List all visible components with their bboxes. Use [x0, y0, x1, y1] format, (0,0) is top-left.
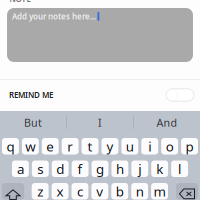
button[interactable]: k [151, 160, 168, 177]
button[interactable]: w [22, 138, 39, 154]
button[interactable]: x [52, 183, 68, 199]
staticText: m [153, 182, 165, 200]
staticText: z [37, 182, 43, 200]
button[interactable]: g [91, 160, 108, 177]
button[interactable]: y [101, 138, 118, 154]
staticText: REMIND ME [9, 90, 53, 100]
button[interactable]: u [121, 138, 138, 154]
staticText: h [116, 160, 124, 178]
button[interactable]: m [151, 183, 168, 199]
staticText: s [37, 160, 43, 178]
button[interactable]: Shift [2, 183, 24, 199]
staticText: c [77, 182, 83, 200]
staticText: a [17, 160, 24, 178]
staticText: x [56, 182, 63, 200]
button[interactable]: o [161, 138, 178, 154]
staticText: y [106, 137, 113, 155]
button[interactable]: s [32, 160, 49, 177]
button[interactable]: d [52, 160, 69, 177]
staticText: f [78, 160, 83, 178]
button[interactable]: z [32, 183, 49, 199]
button[interactable]: n [131, 183, 148, 199]
staticText: b [116, 182, 124, 200]
staticText: n [136, 182, 144, 200]
staticText: k [156, 160, 163, 178]
button[interactable]: a [12, 160, 29, 177]
button[interactable]: h [111, 160, 128, 177]
staticText: d [56, 160, 64, 178]
button[interactable]: I [67, 111, 133, 134]
button[interactable]: q [2, 138, 19, 154]
staticText: r [67, 137, 73, 155]
button[interactable]: i [141, 138, 158, 154]
button[interactable]: And [134, 111, 200, 134]
button[interactable]: t [82, 138, 98, 154]
button[interactable]: e [42, 138, 59, 154]
staticText: But [24, 115, 42, 130]
staticText: o [166, 137, 174, 155]
staticText: l [178, 160, 181, 178]
staticText: u [126, 137, 134, 155]
staticText: NOTE [9, 0, 30, 4]
button[interactable]: f [72, 160, 88, 177]
staticText: t [87, 137, 92, 155]
staticText: Add your notes here... [12, 11, 96, 22]
staticText: q [6, 137, 14, 155]
staticText: p [186, 137, 194, 155]
staticText: v [96, 182, 103, 200]
button[interactable]: But [0, 111, 66, 134]
button[interactable]: l [171, 160, 188, 177]
button[interactable]: REMIND ME [0, 79, 200, 110]
staticText: e [46, 137, 54, 155]
button[interactable]: Delete [176, 183, 198, 199]
staticText: i [148, 137, 151, 155]
staticText: g [96, 160, 104, 178]
button[interactable]: p [181, 138, 198, 154]
button[interactable]: b [111, 183, 128, 199]
button[interactable]: c [71, 183, 88, 199]
staticText: And [156, 115, 177, 130]
staticText: w [25, 137, 35, 155]
button[interactable]: r [62, 138, 79, 154]
staticText: j [138, 160, 141, 178]
button[interactable]: v [91, 183, 108, 199]
button[interactable]: j [131, 160, 148, 177]
button[interactable]: Add your notes here... [7, 8, 193, 62]
staticText: I [98, 115, 102, 130]
